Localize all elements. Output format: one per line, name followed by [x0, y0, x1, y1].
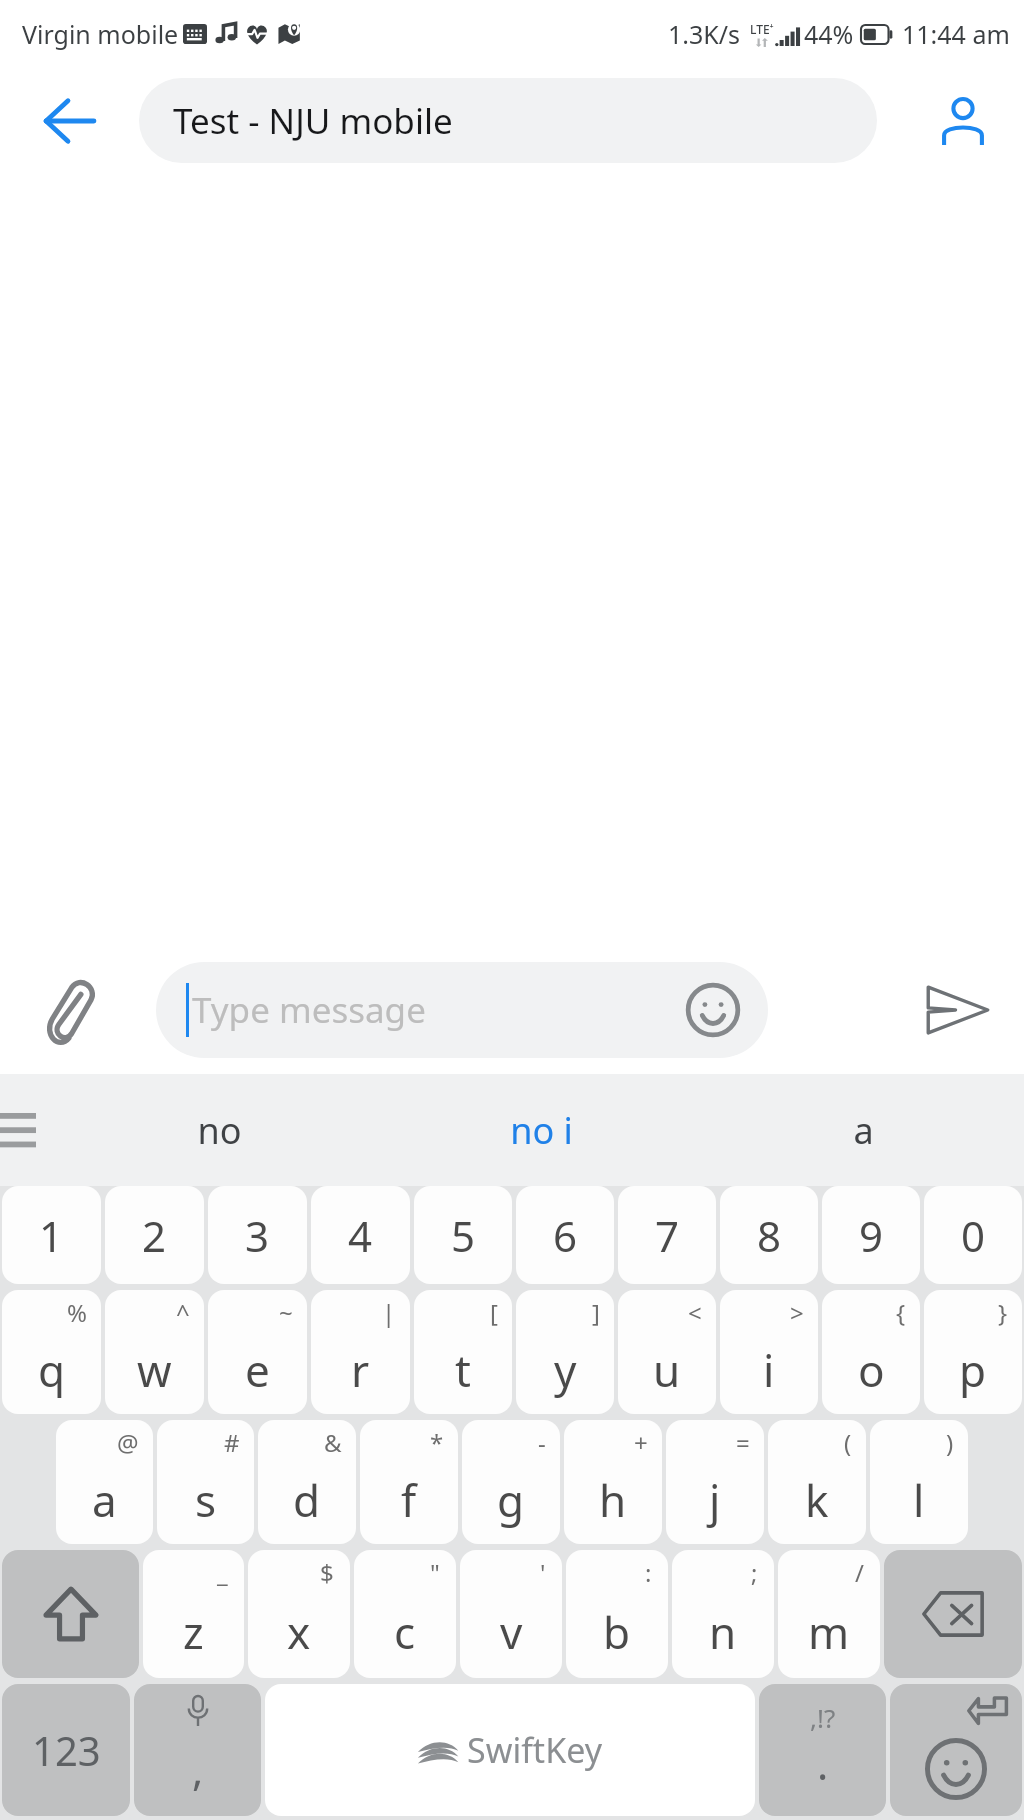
button[interactable]: * [360, 1420, 458, 1544]
button[interactable]: & [258, 1420, 356, 1544]
button[interactable]: Menu [0, 1074, 58, 1186]
staticText: ] [592, 1296, 600, 1329]
staticText: i [763, 1340, 775, 1400]
button[interactable]: % [2, 1290, 101, 1414]
staticText: c [394, 1602, 416, 1662]
button[interactable]: 7 [618, 1186, 716, 1284]
button[interactable]: 4 [311, 1186, 410, 1284]
staticText: # [224, 1426, 240, 1459]
button[interactable]: Send [912, 964, 1004, 1056]
button[interactable]: no [58, 1074, 380, 1186]
button[interactable]: ~ [208, 1290, 307, 1414]
button[interactable]: { [822, 1290, 920, 1414]
button[interactable]: / [778, 1550, 880, 1678]
staticText: 123 [32, 1723, 101, 1777]
button[interactable]: | [311, 1290, 410, 1414]
button[interactable]: ; [672, 1550, 774, 1678]
staticText: b [603, 1602, 631, 1662]
button[interactable]: ' [460, 1550, 562, 1678]
button[interactable]: Emoji and enter [890, 1684, 1022, 1816]
staticText: k [805, 1470, 829, 1530]
staticText: 3 [245, 1207, 270, 1264]
button[interactable]: 123 [2, 1684, 130, 1816]
staticText: 44% [804, 17, 854, 51]
staticText: " [430, 1556, 440, 1589]
button[interactable]: 0 [924, 1186, 1022, 1284]
button[interactable]: 2 [105, 1186, 204, 1284]
staticText: no [197, 1106, 242, 1155]
staticText: ( [844, 1426, 852, 1459]
button[interactable]: 9 [822, 1186, 920, 1284]
staticText: < [688, 1296, 702, 1329]
staticText: - [538, 1426, 546, 1459]
staticText: & [324, 1426, 342, 1459]
staticText: f [401, 1470, 417, 1530]
button[interactable]: ^ [105, 1290, 204, 1414]
staticText: % [67, 1296, 87, 1329]
staticText: | [382, 1296, 396, 1329]
staticText: q [38, 1340, 66, 1400]
button[interactable]: Emoji [682, 979, 744, 1041]
button[interactable]: ) [870, 1420, 968, 1544]
staticText: v [500, 1602, 523, 1662]
button[interactable]: a [702, 1074, 1024, 1186]
button[interactable]: # [157, 1420, 254, 1544]
staticText: x [287, 1602, 311, 1662]
button[interactable]: 8 [720, 1186, 818, 1284]
button[interactable]: } [924, 1290, 1022, 1414]
button[interactable]: Back [30, 82, 108, 160]
staticText: 1 [39, 1207, 64, 1264]
staticText: no i [510, 1106, 573, 1155]
button[interactable]: Type message [156, 962, 768, 1058]
button[interactable]: + [564, 1420, 662, 1544]
staticText: ' [540, 1556, 546, 1589]
button[interactable]: Backspace [884, 1550, 1022, 1678]
button[interactable]: Test - NJU mobile [139, 78, 877, 163]
staticText: e [245, 1340, 270, 1400]
button[interactable]: no i [380, 1074, 702, 1186]
button[interactable]: 3 [208, 1186, 307, 1284]
staticText: o [858, 1340, 885, 1400]
button[interactable]: > [720, 1290, 818, 1414]
button[interactable]: Shift [2, 1550, 139, 1678]
button[interactable]: Attach [22, 964, 114, 1056]
staticText: 1.3K/s [668, 17, 741, 51]
staticText: 8 [757, 1207, 782, 1264]
staticText: 9 [859, 1207, 884, 1264]
staticText: * [430, 1426, 444, 1459]
staticText: ~ [279, 1296, 293, 1329]
staticText: + [634, 1426, 648, 1459]
button[interactable]: ,!? [759, 1684, 886, 1816]
staticText: m [808, 1602, 850, 1662]
button[interactable]: - [462, 1420, 560, 1544]
button[interactable]: [ [414, 1290, 512, 1414]
button[interactable]: ] [516, 1290, 614, 1414]
staticText: a [853, 1106, 874, 1155]
button[interactable]: 1 [2, 1186, 101, 1284]
staticText: w [137, 1340, 172, 1400]
button[interactable]: = [666, 1420, 764, 1544]
staticText: 0 [961, 1207, 986, 1264]
button[interactable]: Contact [924, 82, 1002, 160]
staticText: g [497, 1470, 525, 1530]
button[interactable]: @ [56, 1420, 153, 1544]
button[interactable]: 6 [516, 1186, 614, 1284]
button[interactable]: _ [143, 1550, 244, 1678]
staticText: : [645, 1556, 652, 1589]
button[interactable]: 5 [414, 1186, 512, 1284]
staticText: 2 [142, 1207, 167, 1264]
staticText: z [183, 1602, 204, 1662]
button[interactable]: " [354, 1550, 456, 1678]
button[interactable]: < [618, 1290, 716, 1414]
staticText: } [998, 1296, 1008, 1329]
button[interactable]: ( [768, 1420, 866, 1544]
button[interactable]: : [566, 1550, 668, 1678]
button[interactable]: , [134, 1684, 261, 1816]
staticText: 4 [348, 1207, 373, 1264]
staticText: p [959, 1340, 987, 1400]
button[interactable]: Space [265, 1684, 755, 1816]
button[interactable]: $ [248, 1550, 350, 1678]
staticText: s [195, 1470, 217, 1530]
staticText: Type message [192, 986, 426, 1034]
staticText: u [653, 1340, 681, 1400]
